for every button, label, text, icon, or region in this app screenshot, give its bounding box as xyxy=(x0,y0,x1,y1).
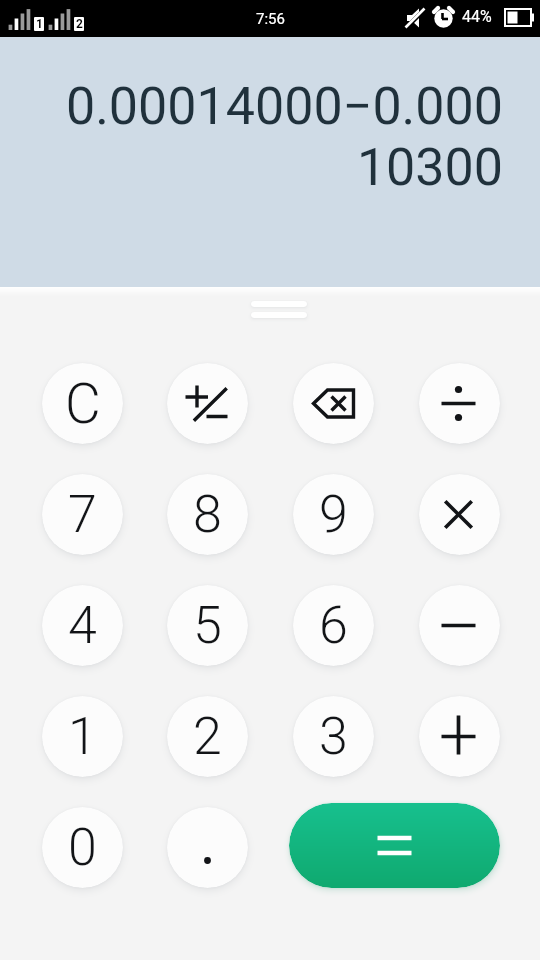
button[interactable]: Minus xyxy=(419,585,500,666)
button[interactable]: 0 xyxy=(42,807,123,888)
button[interactable]: 3 xyxy=(293,696,374,777)
button[interactable]: 6 xyxy=(293,585,374,666)
staticText: 1 xyxy=(68,706,97,767)
staticText: 0.00014000−0.00010300 xyxy=(61,76,503,198)
button[interactable]: 2 xyxy=(167,696,248,777)
staticText: 5 xyxy=(193,595,222,656)
staticText: 2 xyxy=(76,17,83,31)
staticText: 6 xyxy=(319,595,348,656)
staticText: 7:56 xyxy=(256,10,285,28)
staticText: 9 xyxy=(319,484,348,545)
staticText: 1 xyxy=(36,17,43,31)
button[interactable]: Clear xyxy=(42,363,123,444)
button[interactable]: 7 xyxy=(42,474,123,555)
button[interactable]: Backspace xyxy=(293,363,374,444)
button[interactable]: 8 xyxy=(167,474,248,555)
staticText: C xyxy=(65,372,101,436)
button[interactable]: Decimal point xyxy=(167,807,248,888)
button[interactable]: 9 xyxy=(293,474,374,555)
button[interactable]: Divide xyxy=(419,363,500,444)
staticText: 3 xyxy=(319,706,348,767)
button[interactable]: Multiply xyxy=(419,474,500,555)
button[interactable]: Plus xyxy=(419,696,500,777)
staticText: 7 xyxy=(68,484,97,545)
staticText: 44% xyxy=(462,7,492,26)
button[interactable]: Equals xyxy=(289,803,500,888)
button[interactable]: 1 xyxy=(42,696,123,777)
staticText: 0 xyxy=(68,817,97,878)
staticText: 2 xyxy=(193,706,222,767)
staticText: 8 xyxy=(193,484,222,545)
staticText: 4 xyxy=(68,595,97,656)
button[interactable]: 5 xyxy=(167,585,248,666)
button[interactable]: Plus minus xyxy=(167,363,248,444)
button[interactable]: 4 xyxy=(42,585,123,666)
